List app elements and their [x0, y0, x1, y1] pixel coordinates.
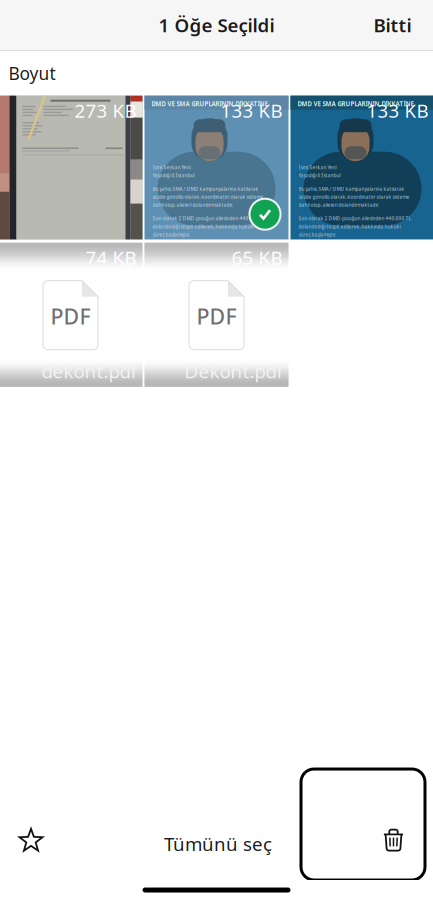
- staticText: 1 Öğe Seçildi: [158, 12, 274, 38]
- staticText: Bu şahıs, SMA / DMD kampanyalarına katıl…: [152, 186, 258, 192]
- staticText: Bitti: [373, 12, 411, 38]
- button[interactable]: Favorilere ekle: [4, 815, 58, 865]
- staticText: dahil olup, aileleri dolandırmaktadır.: [152, 202, 232, 208]
- staticText: Ailelerimizin bu şahsa dikkat etmeleri v…: [152, 245, 241, 251]
- button[interactable]: Bitti: [357, 0, 433, 51]
- staticText: 65 KB: [231, 245, 282, 270]
- staticText: sözde gönüllü olarak, koordinatör olarak…: [298, 194, 409, 200]
- staticText: İsmi: Serkan Yeni: [298, 164, 336, 171]
- staticText: Son olarak 2 DMD çocuğun ailesinden 440.…: [152, 215, 265, 222]
- staticText: dahil olup, aileleri dolandırmaktadır.: [298, 202, 378, 208]
- staticText: İsmi: Serkan Yeni: [152, 164, 190, 171]
- staticText: dolandırdığı tespit edilerek, hakkında h…: [152, 223, 254, 230]
- staticText: Bu şahıs, SMA / DMD kampanyalarına katıl…: [298, 186, 404, 192]
- button[interactable]: Tümünü seç: [148, 817, 288, 870]
- staticText: DMD VE SMA GRUPLARININ DİKKATİNE: [151, 100, 267, 108]
- staticText: Tümünü seç: [164, 831, 272, 856]
- staticText: sözde gönüllü olarak, koordinatör olarak…: [152, 194, 263, 200]
- staticText: 74 KB: [85, 245, 136, 270]
- staticText: PDF: [196, 302, 236, 330]
- staticText: Dekont.pdf: [184, 358, 282, 384]
- staticText: Yaşadığı il: İstanbul: [298, 172, 340, 179]
- staticText: 273 KB: [74, 98, 136, 123]
- staticText: bilgilendirmeleri önem arz etmektedir.: [152, 253, 237, 259]
- staticText: Son olarak 2 DMD çocuğun ailesinden 440.…: [298, 215, 411, 222]
- staticText: DMD VE SMA GRUPLARININ DİKKATİNE: [297, 100, 413, 108]
- staticText: 133 KB: [366, 98, 428, 123]
- staticText: 133 KB: [220, 98, 282, 123]
- staticText: dekont.pdf: [41, 358, 136, 384]
- staticText: Boyut: [8, 61, 55, 85]
- staticText: dolandırdığı tespit edilerek, hakkında h…: [298, 223, 400, 230]
- button[interactable]: Sil: [301, 769, 425, 880]
- staticText: süreç başlamıştır.: [298, 231, 335, 238]
- staticText: PDF: [50, 302, 90, 330]
- staticText: Yaşadığı il: İstanbul: [152, 172, 194, 179]
- staticText: süreç başlamıştır.: [152, 231, 189, 238]
